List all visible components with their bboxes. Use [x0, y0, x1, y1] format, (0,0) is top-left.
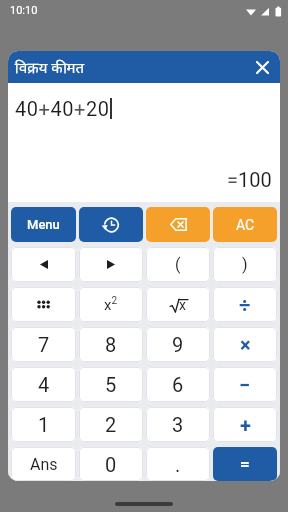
staticText: 4 [38, 373, 50, 396]
button[interactable]: × [213, 327, 277, 362]
button[interactable]: 2 [79, 407, 143, 442]
staticText: 40+40+20 [15, 97, 110, 120]
button[interactable]: ( [146, 247, 210, 282]
button[interactable] [11, 247, 76, 282]
button[interactable]: AC [213, 207, 277, 242]
button[interactable]: 3 [146, 407, 210, 442]
staticText: x2 [104, 295, 118, 314]
button[interactable]: 8 [79, 327, 143, 362]
button[interactable]: 5 [79, 367, 143, 402]
button[interactable] [79, 247, 143, 282]
staticText: 10:10 [10, 4, 38, 17]
button[interactable]: − [213, 367, 277, 402]
staticText: = [240, 454, 250, 474]
button[interactable]: 0 [79, 447, 143, 481]
button[interactable] [146, 207, 210, 242]
button[interactable]: x [146, 287, 210, 322]
staticText: 2 [105, 413, 117, 436]
staticText: − [239, 373, 251, 396]
staticText: ÷ [239, 293, 251, 316]
staticText: विक्रय कीमत [15, 57, 85, 77]
staticText: 6 [172, 373, 184, 396]
button[interactable]: + [213, 407, 277, 442]
button[interactable]: x2 [79, 287, 143, 322]
button[interactable]: ) [213, 247, 277, 282]
staticText: AC [236, 217, 255, 233]
button[interactable]: . [146, 447, 210, 481]
staticText: 7 [38, 333, 50, 356]
staticText: x [179, 297, 186, 313]
staticText: 0 [105, 453, 117, 476]
staticText: 5 [105, 373, 117, 396]
button[interactable]: = [213, 447, 277, 481]
staticText: Ans [30, 455, 58, 474]
button[interactable] [79, 207, 143, 242]
button[interactable]: 1 [11, 407, 76, 442]
button[interactable]: 7 [11, 327, 76, 362]
staticText: 9 [172, 333, 184, 356]
staticText: . [175, 453, 181, 476]
button[interactable]: 4 [11, 367, 76, 402]
button[interactable] [252, 57, 272, 77]
staticText: ) [242, 255, 248, 274]
staticText: 1 [38, 413, 50, 436]
staticText: + [240, 413, 251, 436]
button[interactable]: 9 [146, 327, 210, 362]
button[interactable]: विक्रय कीमत [8, 51, 280, 83]
staticText: =100 [227, 168, 272, 191]
button[interactable] [11, 287, 76, 322]
button[interactable]: ÷ [213, 287, 277, 322]
staticText: ( [175, 255, 181, 274]
button[interactable]: Menu [11, 207, 76, 242]
button[interactable]: 6 [146, 367, 210, 402]
staticText: 8 [105, 333, 117, 356]
staticText: × [240, 333, 251, 356]
button[interactable]: Ans [11, 447, 76, 481]
staticText: Menu [27, 217, 60, 232]
staticText: 3 [172, 413, 184, 436]
